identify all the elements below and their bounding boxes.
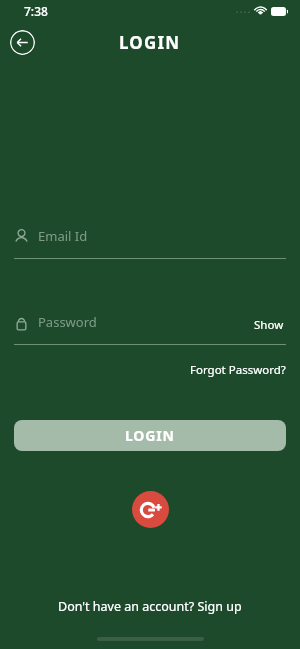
- button[interactable]: Sign in with Google: [132, 491, 169, 528]
- button[interactable]: Don't have an account? Sign up: [50, 594, 250, 619]
- button[interactable]: LOGIN: [14, 420, 286, 451]
- staticText: Show: [254, 317, 284, 333]
- staticText: Don't have an account? Sign up: [58, 598, 242, 615]
- staticText: Password: [38, 313, 97, 331]
- button[interactable]: Back: [10, 30, 35, 55]
- staticText: LOGIN: [119, 31, 181, 54]
- staticText: Forgot Password?: [190, 362, 286, 378]
- staticText: Email Id: [38, 227, 88, 245]
- button[interactable]: Email Id: [14, 227, 286, 259]
- button[interactable]: Password: [14, 313, 97, 331]
- button[interactable]: Show: [252, 315, 286, 335]
- button[interactable]: Forgot Password?: [188, 359, 288, 381]
- staticText: LOGIN: [125, 426, 175, 445]
- staticText: 7:38: [24, 3, 48, 19]
